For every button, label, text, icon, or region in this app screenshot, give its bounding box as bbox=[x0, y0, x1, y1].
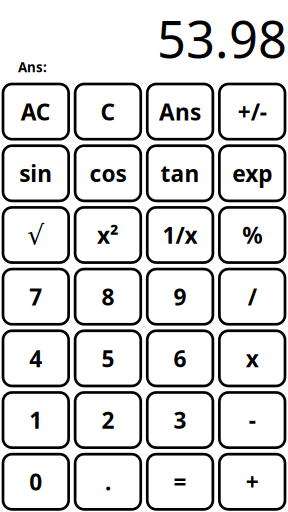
button[interactable]: All clear bbox=[3, 84, 69, 139]
staticText: % bbox=[242, 220, 262, 250]
button[interactable]: Exponent bbox=[219, 146, 285, 201]
button[interactable]: Plus bbox=[219, 454, 285, 509]
button[interactable]: 4 bbox=[3, 331, 69, 386]
staticText: 7 bbox=[29, 282, 42, 312]
staticText: = bbox=[174, 467, 187, 497]
button[interactable]: Multiply bbox=[219, 331, 285, 386]
button[interactable]: 0 bbox=[3, 454, 69, 509]
staticText: sin bbox=[19, 158, 52, 188]
staticText: 53.98 bbox=[157, 5, 287, 72]
staticText: 6 bbox=[174, 343, 187, 373]
staticText: 8 bbox=[101, 282, 114, 312]
button[interactable]: 6 bbox=[147, 331, 213, 386]
button[interactable]: 2 bbox=[75, 392, 141, 448]
staticText: - bbox=[249, 405, 256, 435]
staticText: 4 bbox=[29, 343, 42, 373]
button[interactable]: Sine bbox=[3, 146, 69, 201]
staticText: 5 bbox=[101, 343, 114, 373]
staticText: exp bbox=[232, 158, 272, 188]
staticText: Ans: bbox=[18, 58, 47, 76]
staticText: 2 bbox=[101, 405, 114, 435]
staticText: 1 bbox=[29, 405, 42, 435]
button[interactable]: Reciprocal bbox=[147, 207, 213, 263]
staticText: C bbox=[100, 96, 115, 127]
button[interactable]: Percent bbox=[219, 207, 285, 263]
button[interactable]: Plus minus bbox=[219, 84, 285, 139]
button[interactable]: Squared bbox=[75, 207, 141, 263]
button[interactable]: Equals bbox=[147, 454, 213, 509]
button[interactable]: 3 bbox=[147, 392, 213, 448]
staticText: tan bbox=[161, 158, 200, 188]
staticText: 3 bbox=[174, 405, 187, 435]
staticText: AC bbox=[21, 96, 51, 127]
staticText: x² bbox=[97, 220, 119, 250]
staticText: . bbox=[105, 467, 111, 497]
button[interactable]: Clear bbox=[75, 84, 141, 139]
staticText: cos bbox=[89, 158, 126, 188]
staticText: 9 bbox=[174, 282, 187, 312]
button[interactable]: 5 bbox=[75, 331, 141, 386]
staticText: + bbox=[246, 467, 259, 497]
staticText: +/- bbox=[238, 96, 267, 127]
button[interactable]: Tangent bbox=[147, 146, 213, 201]
staticText: 0 bbox=[29, 467, 42, 497]
staticText: √ bbox=[27, 220, 44, 250]
staticText: 1/x bbox=[163, 220, 198, 250]
button[interactable]: Divide bbox=[219, 269, 285, 324]
button[interactable]: 9 bbox=[147, 269, 213, 324]
button[interactable]: 1 bbox=[3, 392, 69, 448]
button[interactable]: Square root bbox=[3, 207, 69, 263]
button[interactable]: Decimal point bbox=[75, 454, 141, 509]
button[interactable]: Answer bbox=[147, 84, 213, 139]
button[interactable]: Minus bbox=[219, 392, 285, 448]
staticText: / bbox=[248, 282, 257, 312]
staticText: x bbox=[246, 343, 259, 373]
button[interactable]: 7 bbox=[3, 269, 69, 324]
staticText: Ans bbox=[159, 96, 201, 127]
button[interactable]: 8 bbox=[75, 269, 141, 324]
button[interactable]: Cosine bbox=[75, 146, 141, 201]
